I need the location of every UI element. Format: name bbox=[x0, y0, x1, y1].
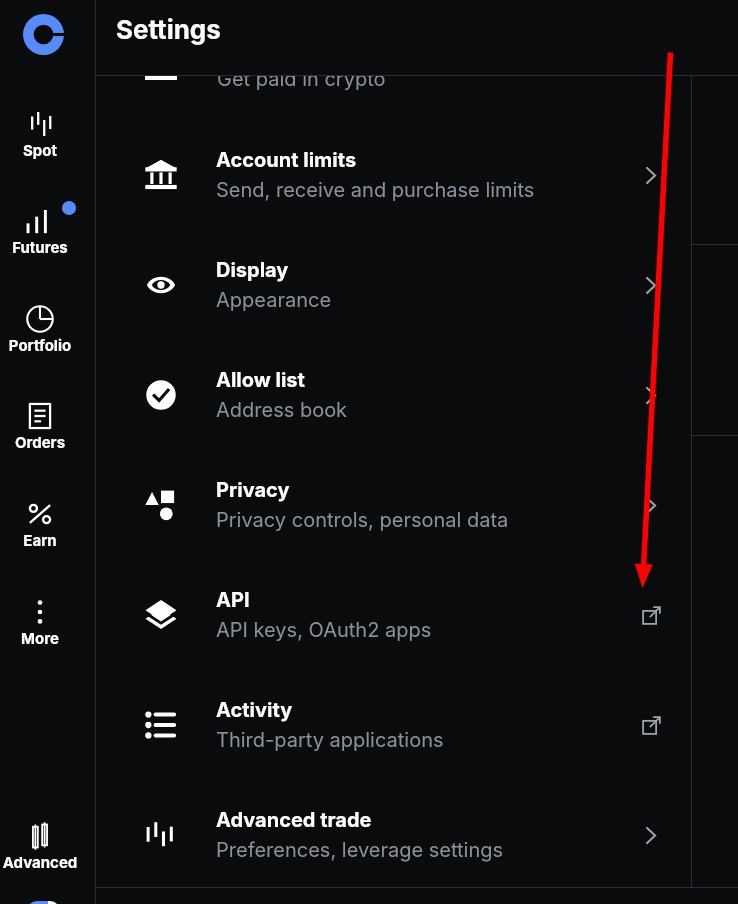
staticText: Portfolio bbox=[0, 336, 80, 354]
staticText: Privacy bbox=[216, 478, 290, 502]
staticText: Display bbox=[216, 258, 289, 282]
staticText: Spot bbox=[0, 141, 80, 159]
button[interactable]: Advanced bbox=[0, 805, 95, 869]
staticText: Address book bbox=[216, 398, 348, 422]
staticText: Earn bbox=[0, 531, 80, 549]
staticText: API keys, OAuth2 apps bbox=[216, 618, 432, 642]
button[interactable]: Allow list bbox=[96, 340, 691, 450]
button[interactable]: Display bbox=[96, 230, 691, 340]
button[interactable]: Earn bbox=[0, 483, 95, 547]
button[interactable]: Privacy bbox=[96, 450, 691, 560]
staticText: Privacy controls, personal data bbox=[216, 508, 509, 532]
button[interactable]: Advanced trade bbox=[96, 780, 691, 887]
staticText: Orders bbox=[0, 433, 80, 451]
staticText: Allow list bbox=[216, 368, 305, 392]
staticText: Futures bbox=[0, 238, 80, 256]
button[interactable]: Settings bbox=[96, 0, 738, 75]
staticText: Preferences, leverage settings bbox=[216, 838, 504, 862]
button[interactable]: API bbox=[96, 560, 691, 670]
staticText: Account limits bbox=[216, 148, 357, 172]
button[interactable]: More bbox=[0, 581, 95, 645]
staticText: Third-party applications bbox=[216, 728, 444, 752]
staticText: Advanced bbox=[0, 853, 80, 871]
staticText: Settings bbox=[116, 14, 221, 45]
staticText: Get paid in crypto bbox=[217, 75, 386, 91]
staticText: Advanced trade bbox=[216, 808, 372, 832]
button[interactable]: Portfolio bbox=[0, 288, 95, 352]
staticText: API bbox=[216, 588, 250, 612]
button[interactable]: Coinbase home bbox=[23, 14, 64, 55]
button[interactable]: Activity bbox=[96, 670, 691, 780]
staticText: Appearance bbox=[216, 288, 332, 312]
staticText: Activity bbox=[216, 698, 293, 722]
button[interactable]: Account limits bbox=[96, 120, 691, 230]
button[interactable]: Orders bbox=[0, 385, 95, 449]
staticText: More bbox=[0, 629, 80, 647]
staticText: Send, receive and purchase limits bbox=[216, 178, 535, 202]
button[interactable]: Spot bbox=[0, 93, 95, 157]
button[interactable]: Futures bbox=[0, 190, 95, 254]
